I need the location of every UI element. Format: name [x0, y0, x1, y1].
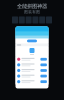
staticText: 图装有图: [24, 10, 40, 14]
staticText: 全能拼图神器: [17, 3, 47, 10]
